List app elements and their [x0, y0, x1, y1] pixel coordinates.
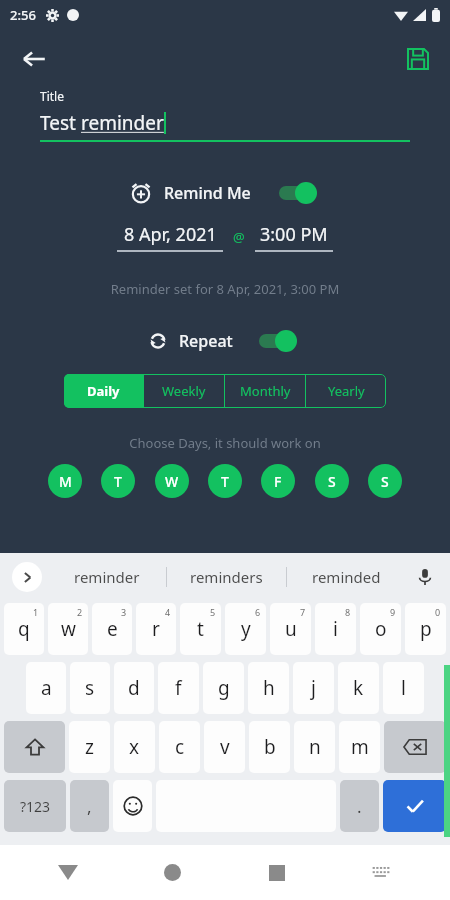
button[interactable]: Save [398, 39, 438, 79]
staticText: F [274, 472, 282, 491]
button[interactable]: u [270, 603, 311, 655]
button[interactable]: Shift [4, 721, 65, 773]
button[interactable]: g [203, 662, 244, 714]
button[interactable]: reminded [287, 553, 406, 600]
button[interactable]: Back [12, 37, 56, 81]
button[interactable]: reminder [48, 553, 166, 600]
button[interactable]: o [360, 603, 401, 655]
button[interactable]: Daily [64, 374, 143, 408]
button[interactable]: h [248, 662, 289, 714]
staticText: r [152, 616, 160, 642]
button[interactable]: k [338, 662, 379, 714]
staticText: S [328, 472, 336, 491]
staticText: 8 [345, 606, 351, 618]
staticText: 3:00 PM [260, 222, 328, 247]
button[interactable]: v [204, 721, 245, 773]
button[interactable]: t [180, 603, 221, 655]
button[interactable]: e [92, 603, 132, 655]
staticText: Yearly [328, 382, 365, 400]
staticText: g [218, 675, 230, 701]
button[interactable]: i [315, 603, 356, 655]
staticText: 6 [255, 606, 261, 618]
button[interactable]: Switch keyboard [329, 845, 434, 900]
staticText: m [351, 734, 369, 760]
button[interactable]: y [225, 603, 266, 655]
staticText: l [401, 675, 406, 701]
button[interactable]: Period [340, 780, 379, 832]
button[interactable]: F [261, 464, 295, 498]
button[interactable]: 8 Apr, 2021 [117, 222, 223, 252]
button[interactable]: Emoji [113, 780, 152, 832]
button[interactable]: Home [120, 845, 224, 900]
button[interactable]: d [114, 662, 154, 714]
button[interactable]: S [315, 464, 349, 498]
button[interactable]: z [69, 721, 110, 773]
staticText: reminded [312, 567, 381, 587]
staticText: 8 Apr, 2021 [124, 222, 217, 247]
staticText: @ [233, 228, 245, 246]
button[interactable]: Monthly [225, 374, 305, 408]
button[interactable]: w [48, 603, 88, 655]
button[interactable]: Comma [70, 780, 109, 832]
staticText: k [353, 675, 364, 701]
staticText: o [375, 616, 387, 642]
staticText: x [129, 734, 140, 760]
button[interactable]: T [208, 464, 242, 498]
button[interactable]: f [158, 662, 199, 714]
button[interactable]: W [155, 464, 189, 498]
button[interactable]: M [48, 464, 82, 498]
staticText: Title [40, 88, 64, 104]
staticText: Reminder set for 8 Apr, 2021, 3:00 PM [0, 280, 450, 298]
staticText: i [333, 616, 338, 642]
button[interactable]: Weekly [144, 374, 224, 408]
staticText: reminders [190, 567, 263, 587]
button[interactable]: More suggestions [12, 562, 42, 592]
button[interactable]: 3:00 PM [255, 222, 333, 252]
staticText: 5 [210, 606, 216, 618]
staticText: h [263, 675, 275, 701]
staticText: 0 [435, 606, 441, 618]
button[interactable]: q [4, 603, 44, 655]
staticText: b [264, 734, 276, 760]
button[interactable]: Hide keyboard [16, 845, 120, 900]
button[interactable]: Done [383, 780, 446, 832]
staticText: M [59, 472, 72, 491]
button[interactable]: m [339, 721, 380, 773]
button[interactable]: Recents [224, 845, 329, 900]
staticText: u [285, 616, 297, 642]
staticText: 3 [121, 606, 127, 618]
staticText: p [420, 616, 432, 642]
button[interactable]: S [368, 464, 402, 498]
staticText: Daily [87, 382, 120, 400]
button[interactable]: x [114, 721, 155, 773]
staticText: Weekly [162, 382, 206, 400]
button[interactable]: T [101, 464, 135, 498]
button[interactable]: p [405, 603, 446, 655]
staticText: n [309, 734, 321, 760]
button[interactable]: Voice input [410, 562, 440, 592]
staticText: e [107, 616, 118, 642]
button[interactable]: l [383, 662, 424, 714]
button[interactable]: j [293, 662, 334, 714]
staticText: a [41, 675, 52, 701]
button[interactable]: Toggle [257, 328, 301, 354]
button[interactable]: Backspace [384, 721, 446, 773]
staticText: 9 [390, 606, 396, 618]
staticText: 2 [77, 606, 83, 618]
staticText: f [175, 675, 182, 701]
staticText: v [220, 734, 230, 760]
button[interactable]: s [70, 662, 110, 714]
staticText: Test [40, 110, 81, 136]
button[interactable]: ?123 [4, 780, 66, 832]
button[interactable]: r [136, 603, 176, 655]
button[interactable]: reminders [167, 553, 286, 600]
button[interactable]: a [26, 662, 66, 714]
button[interactable]: n [294, 721, 335, 773]
button[interactable]: Yearly [306, 374, 386, 408]
staticText: T [114, 472, 122, 491]
button[interactable]: b [249, 721, 290, 773]
button[interactable]: c [159, 721, 200, 773]
button[interactable]: Toggle [277, 180, 321, 206]
staticText: Monthly [240, 382, 291, 400]
